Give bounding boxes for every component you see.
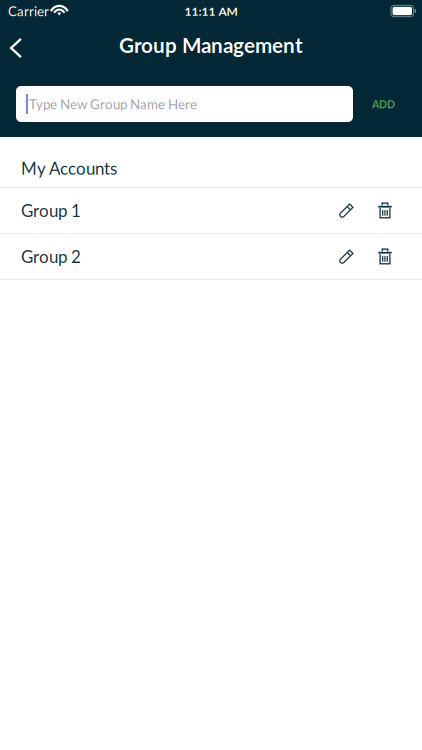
button[interactable]: Back (0, 26, 32, 70)
staticText: Group 2 (21, 246, 81, 267)
staticText: 11:11 AM (184, 4, 237, 18)
staticText: Group Management (119, 33, 303, 57)
staticText: ADD (372, 98, 395, 110)
staticText: Carrier (8, 3, 49, 19)
staticText: My Accounts (21, 158, 117, 178)
button[interactable]: Edit Group 2 (328, 234, 366, 279)
button[interactable]: Edit Group 1 (328, 188, 366, 233)
button[interactable]: Delete Group 2 (366, 234, 404, 279)
button[interactable]: Delete Group 1 (366, 188, 404, 233)
button[interactable]: ADD (353, 86, 414, 122)
staticText: Type New Group Name Here (29, 96, 197, 112)
staticText: Group 1 (21, 200, 81, 221)
